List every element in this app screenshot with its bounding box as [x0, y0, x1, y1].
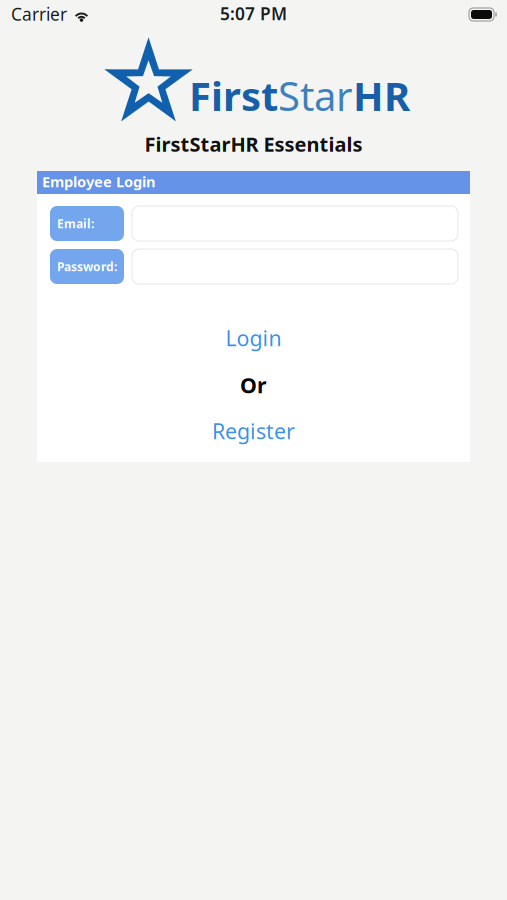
button[interactable]: Email:: [50, 206, 124, 241]
button[interactable]: Password:: [50, 249, 124, 284]
staticText: Email:: [57, 215, 94, 231]
staticText: HR: [353, 69, 410, 122]
staticText: Employee Login: [42, 172, 156, 191]
staticText: First: [189, 69, 278, 122]
staticText: Login: [225, 324, 281, 352]
staticText: Star: [278, 69, 353, 122]
button[interactable]: Register: [37, 416, 470, 446]
staticText: Register: [212, 417, 295, 445]
button[interactable]: Password field: [132, 249, 458, 284]
staticText: Or: [240, 371, 267, 399]
staticText: 5:07 PM: [220, 2, 287, 25]
staticText: Password:: [57, 258, 117, 274]
staticText: FirstStarHR Essentials: [144, 131, 362, 157]
button[interactable]: Email field: [132, 206, 458, 241]
button[interactable]: Login: [37, 323, 470, 353]
staticText: Carrier: [11, 2, 67, 25]
